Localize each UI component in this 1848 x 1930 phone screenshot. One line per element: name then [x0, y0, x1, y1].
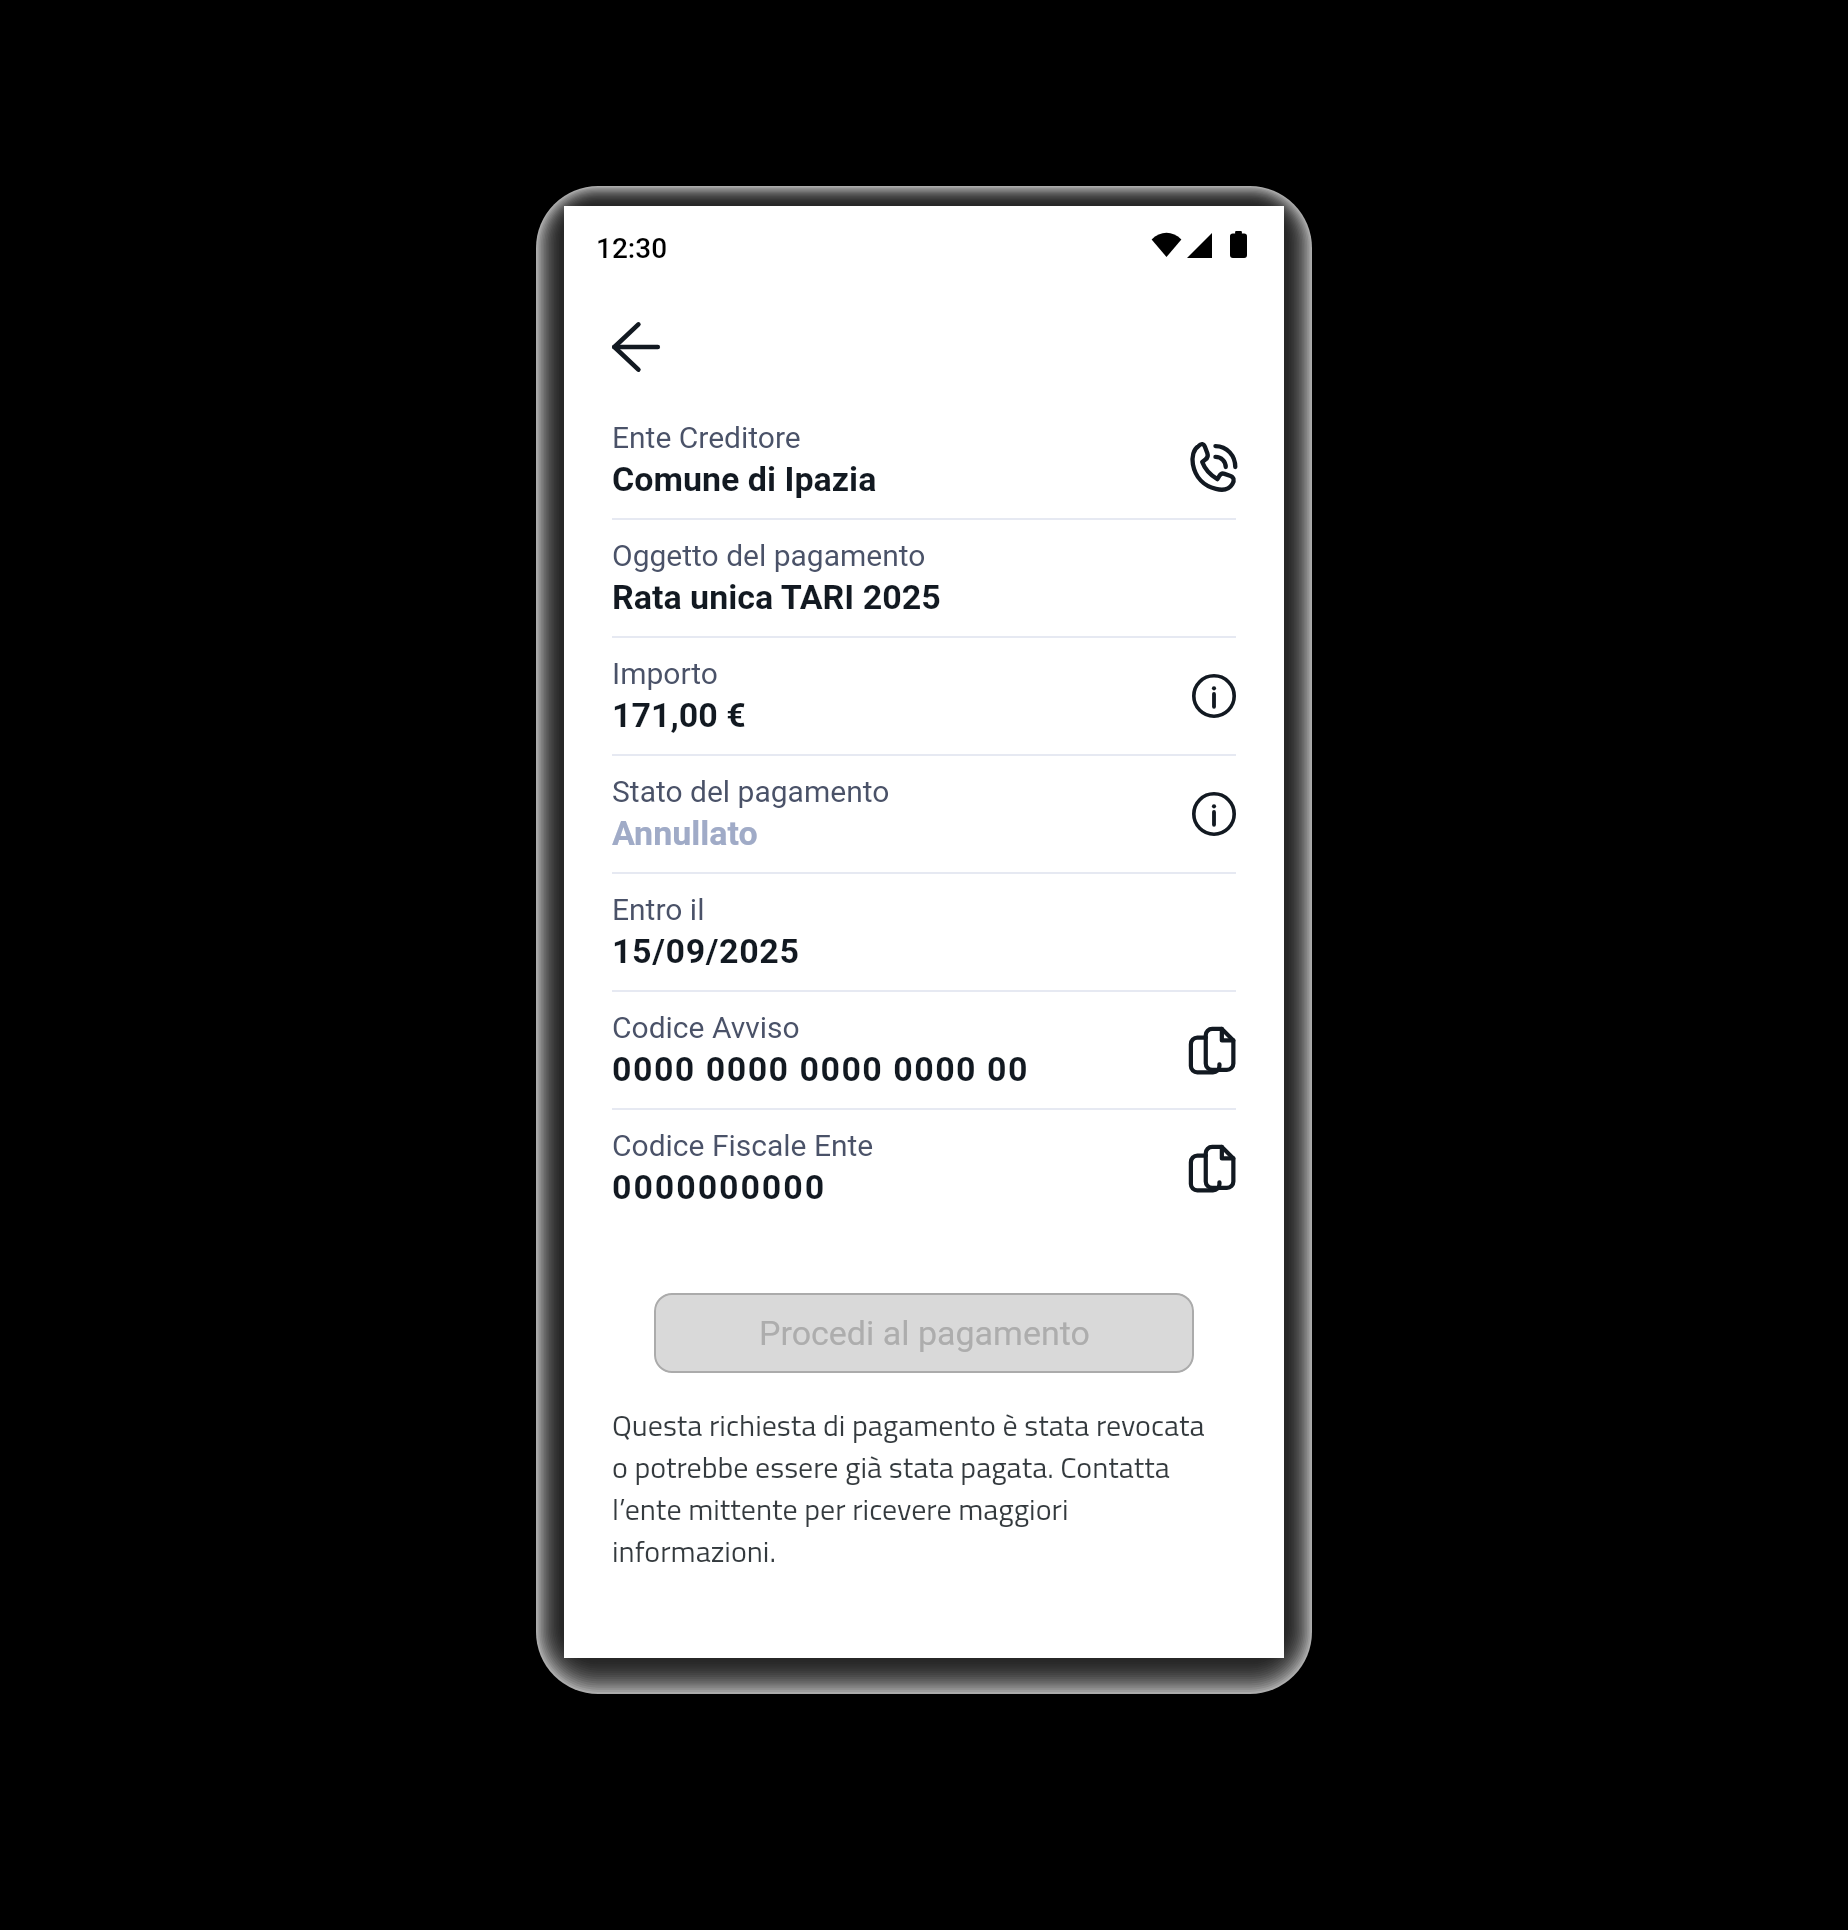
staticText: Codice Avviso	[612, 1010, 800, 1045]
button[interactable]: Informazioni sullo stato	[1174, 783, 1236, 845]
button[interactable]: Codice Fiscale Ente	[612, 1110, 1236, 1226]
staticText: Entro il	[612, 892, 705, 927]
staticText: Comune di Ipazia	[612, 459, 877, 499]
staticText: Procedi al pagamento	[759, 1313, 1090, 1353]
button[interactable]: Codice Avviso	[612, 992, 1236, 1108]
button[interactable]: Informazioni sull'importo	[1174, 665, 1236, 727]
button[interactable]: Ente Creditore	[612, 402, 1236, 518]
staticText: Annullato	[612, 813, 758, 853]
staticText: Questa richiesta di pagamento è stata re…	[612, 1402, 1208, 1574]
staticText: Codice Fiscale Ente	[612, 1128, 874, 1163]
button[interactable]: Copia codice avviso	[1174, 1019, 1236, 1081]
button[interactable]: Entro il	[612, 874, 1236, 990]
button[interactable]: Oggetto del pagamento	[612, 520, 1236, 636]
staticText: 171,00 €	[612, 695, 746, 735]
staticText: Importo	[612, 656, 718, 691]
staticText: Ente Creditore	[612, 420, 801, 455]
button[interactable]: Procedi al pagamento	[654, 1293, 1194, 1373]
button[interactable]: Copia codice fiscale ente	[1174, 1137, 1236, 1199]
button[interactable]: Stato del pagamento	[612, 756, 1236, 872]
button[interactable]: Chiama l'ente creditore	[1174, 429, 1236, 491]
staticText: Rata unica TARI 2025	[612, 577, 941, 617]
staticText: 0000000000	[612, 1167, 827, 1207]
staticText: Oggetto del pagamento	[612, 538, 926, 573]
staticText: Stato del pagamento	[612, 774, 890, 809]
button[interactable]: Indietro	[600, 311, 672, 383]
button[interactable]: Importo	[612, 638, 1236, 754]
staticText: 15/09/2025	[612, 931, 800, 971]
staticText: 12:30	[596, 232, 668, 265]
staticText: 0000 0000 0000 0000 00	[612, 1049, 1029, 1089]
